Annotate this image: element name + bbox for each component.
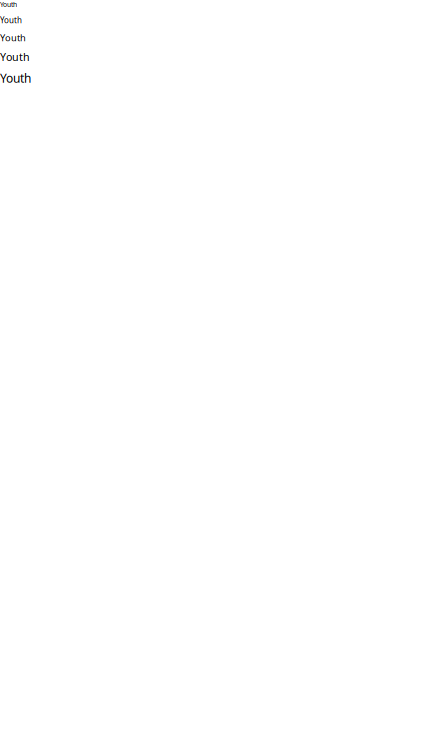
staticText: Youth [0,70,31,86]
staticText: Youth [0,50,30,64]
staticText: Youth [0,0,17,9]
staticText: Youth [0,15,22,25]
staticText: Youth [0,31,26,44]
